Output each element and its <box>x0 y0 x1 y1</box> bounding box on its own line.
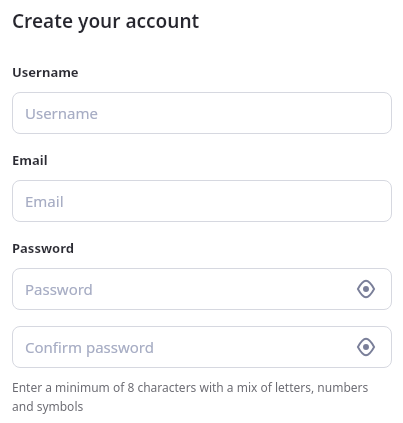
button[interactable]: Show confirm password <box>353 334 379 360</box>
staticText: Confirm password <box>25 337 154 357</box>
staticText: Create your account <box>12 8 200 34</box>
staticText: Password <box>25 279 93 299</box>
staticText: Username <box>25 103 98 123</box>
button[interactable]: Email <box>12 180 392 222</box>
button[interactable]: Username <box>12 92 392 134</box>
staticText: Password <box>12 239 74 257</box>
button[interactable]: Show password <box>353 276 379 302</box>
staticText: Username <box>12 63 79 81</box>
button[interactable]: Password <box>12 268 392 310</box>
staticText: Email <box>12 151 48 169</box>
button[interactable]: Confirm password <box>12 326 392 368</box>
staticText: Email <box>25 191 64 211</box>
staticText: Enter a minimum of 8 characters with a m… <box>12 379 392 414</box>
